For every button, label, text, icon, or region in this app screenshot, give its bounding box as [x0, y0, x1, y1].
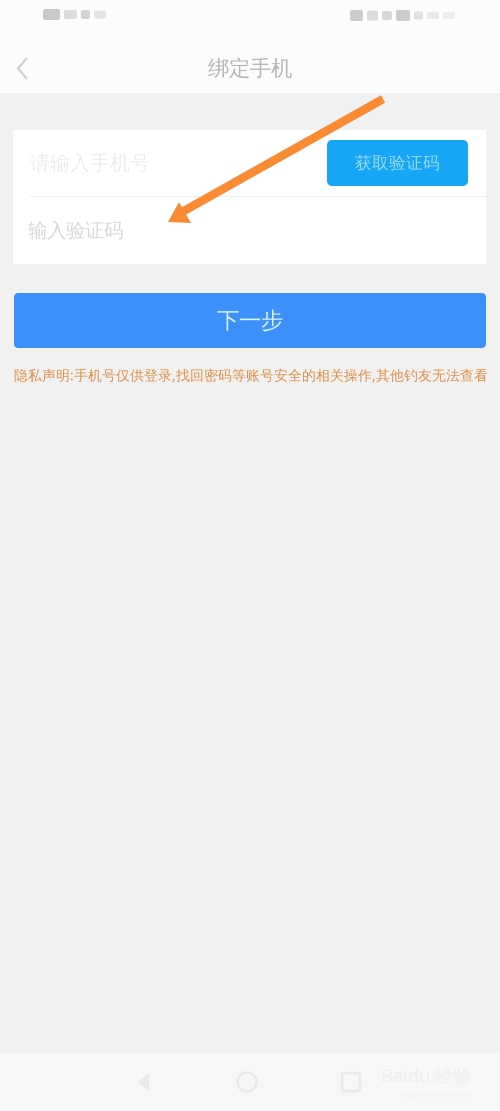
- staticText: 隐私声明:手机号仅供登录,找回密码等账号安全的相关操作,其他钓友无法查看: [14, 366, 488, 384]
- staticText: 获取验证码: [355, 152, 440, 173]
- staticText: 请输入手机号: [30, 150, 150, 176]
- button[interactable]: 获取验证码: [327, 140, 468, 186]
- staticText: 输入验证码: [28, 218, 123, 243]
- button[interactable]: 返回: [0, 44, 46, 93]
- staticText: Baidu 经验: [381, 1063, 471, 1088]
- button[interactable]: 下一步: [14, 293, 486, 348]
- staticText: 下一步: [217, 306, 283, 335]
- staticText: 绑定手机: [208, 55, 292, 82]
